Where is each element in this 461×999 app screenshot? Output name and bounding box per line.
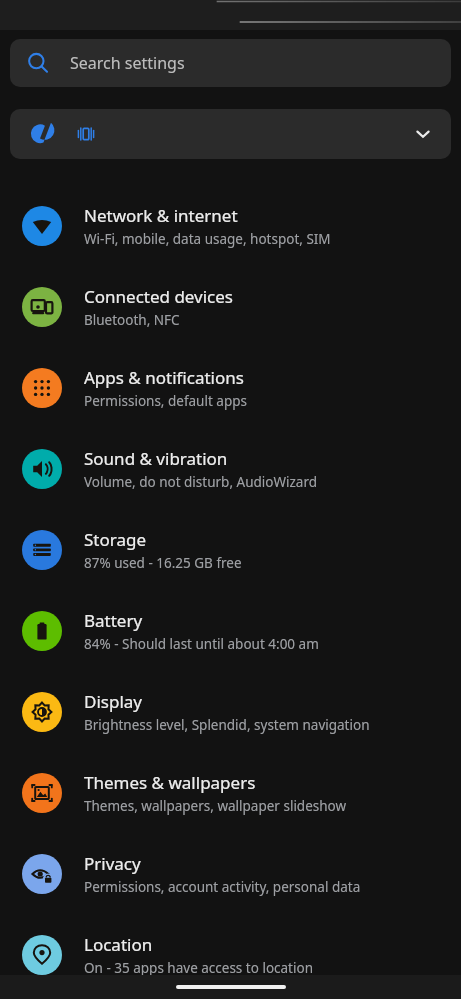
staticText: Themes, wallpapers, wallpaper slideshow: [84, 797, 347, 815]
button[interactable]: Search settings: [10, 39, 451, 87]
staticText: Brightness level, Splendid, system navig…: [84, 716, 370, 734]
button[interactable]: Network & internet: [0, 185, 461, 266]
staticText: 87% used - 16.25 GB free: [84, 554, 242, 572]
button[interactable]: Battery: [0, 590, 461, 671]
staticText: Location: [84, 933, 153, 956]
staticText: Search settings: [70, 52, 185, 74]
staticText: Bluetooth, NFC: [84, 311, 180, 329]
staticText: Wi-Fi, mobile, data usage, hotspot, SIM: [84, 230, 331, 248]
button[interactable]: Privacy: [0, 833, 461, 914]
staticText: 84% - Should last until about 4:00 am: [84, 635, 319, 653]
staticText: Connected devices: [84, 285, 234, 308]
button[interactable]: Sound & vibration: [0, 428, 461, 509]
staticText: Network & internet: [84, 204, 238, 227]
staticText: Permissions, account activity, personal …: [84, 878, 361, 896]
staticText: Themes & wallpapers: [84, 771, 256, 794]
other: Expand: [413, 124, 433, 144]
staticText: Privacy: [84, 852, 141, 875]
staticText: Sound & vibration: [84, 447, 228, 470]
button[interactable]: Connected devices: [0, 266, 461, 347]
staticText: Display: [84, 690, 142, 713]
button[interactable]: Location: [0, 914, 461, 995]
staticText: Apps & notifications: [84, 366, 244, 389]
staticText: Volume, do not disturb, AudioWizard: [84, 473, 318, 491]
other: Do not disturb: [28, 122, 52, 146]
button[interactable]: Do not disturb: [10, 109, 451, 159]
button[interactable]: Apps & notifications: [0, 347, 461, 428]
staticText: On - 35 apps have access to location: [84, 959, 313, 977]
button[interactable]: Display: [0, 671, 461, 752]
staticText: Battery: [84, 609, 143, 632]
other: Vibrate: [76, 124, 96, 144]
staticText: Permissions, default apps: [84, 392, 247, 410]
staticText: Storage: [84, 528, 147, 551]
button[interactable]: Themes & wallpapers: [0, 752, 461, 833]
button[interactable]: Storage: [0, 509, 461, 590]
